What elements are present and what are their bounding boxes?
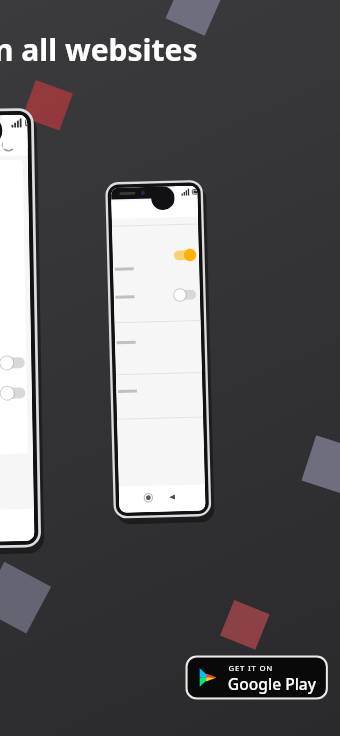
button[interactable]: Get it on Google Play [188, 658, 325, 697]
